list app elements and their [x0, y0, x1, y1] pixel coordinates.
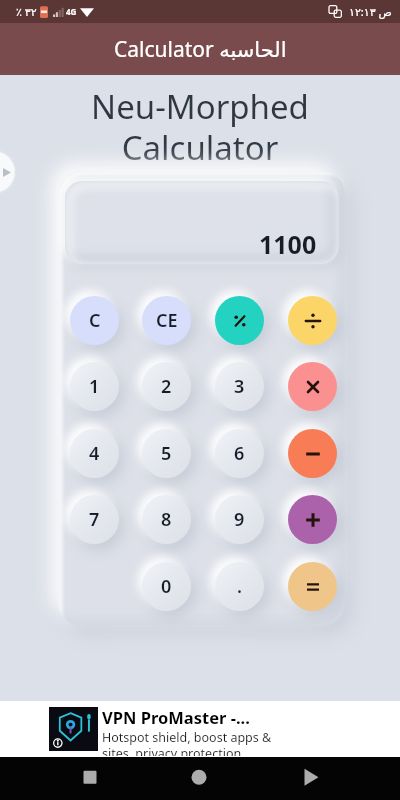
button[interactable]: Add	[288, 495, 337, 544]
staticText: Neu-Morphed Calculator	[91, 84, 309, 170]
staticText: 7	[89, 507, 100, 532]
staticText: ص ١٢:١٣	[349, 4, 392, 19]
button[interactable]: Divide	[288, 296, 337, 345]
button[interactable]: .	[215, 562, 264, 611]
button[interactable]: 3	[215, 362, 264, 411]
staticText: VPN ProMaster -...	[102, 706, 250, 728]
staticText: 6	[234, 441, 245, 466]
button[interactable]: 9	[215, 495, 264, 544]
staticText: 9	[234, 507, 245, 532]
staticText: ٪ ٣٢	[16, 4, 37, 19]
staticText: 4	[89, 441, 100, 466]
button[interactable]: 6	[215, 429, 264, 478]
other: Add	[303, 510, 323, 530]
button[interactable]: 1	[70, 362, 119, 411]
staticText: 4G	[66, 6, 77, 17]
other: Subtract	[303, 444, 323, 464]
button[interactable]: CE	[142, 296, 191, 345]
staticText: Hotspot shield, boost apps & sites, priv…	[102, 729, 272, 756]
other: Percent	[230, 311, 250, 331]
button[interactable]: 0	[142, 562, 191, 611]
button[interactable]: C	[70, 296, 119, 345]
other: Divide	[303, 311, 323, 331]
button[interactable]: Multiply	[288, 362, 337, 411]
button[interactable]: Equals	[288, 562, 337, 611]
button[interactable]: 5	[142, 429, 191, 478]
button[interactable]: 8	[142, 495, 191, 544]
staticText: 1100	[259, 227, 317, 261]
other: Equals	[303, 577, 323, 597]
staticText: 8	[161, 507, 172, 532]
button[interactable]: 4	[70, 429, 119, 478]
button[interactable]: Open side panel	[0, 150, 16, 194]
staticText: 0	[161, 574, 172, 599]
staticText: C	[89, 308, 101, 333]
staticText: CE	[156, 308, 178, 333]
button[interactable]: Subtract	[288, 429, 337, 478]
staticText: 5	[161, 441, 172, 466]
staticText: 1	[89, 374, 100, 399]
button[interactable]: Percent	[215, 296, 264, 345]
staticText: 3	[234, 374, 245, 399]
button[interactable]: 7	[70, 495, 119, 544]
staticText: Calculator الحاسبه	[114, 35, 287, 64]
staticText: 2	[161, 374, 172, 399]
staticText: .	[237, 574, 242, 599]
button[interactable]: 2	[142, 362, 191, 411]
other: Multiply	[303, 377, 323, 397]
